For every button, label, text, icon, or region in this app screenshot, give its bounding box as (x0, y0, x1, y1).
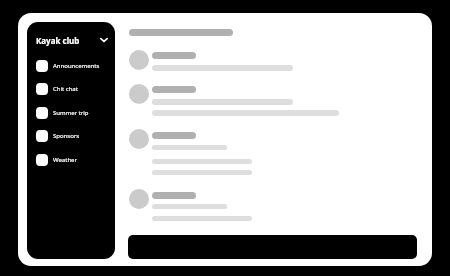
button[interactable]: Summer trip (31, 104, 111, 122)
button[interactable]: Kayak club (27, 32, 115, 48)
staticText: Kayak club (36, 35, 80, 46)
staticText: Summer trip (53, 109, 89, 117)
staticText: Weather (53, 156, 77, 164)
button[interactable]: Weather (31, 151, 111, 169)
staticText: Chit chat (53, 85, 78, 93)
staticText: Announcements (53, 62, 100, 70)
button[interactable]: Announcements (31, 57, 111, 75)
staticText: Sponsors (53, 132, 80, 140)
button[interactable]: Sponsors (31, 127, 111, 145)
button[interactable] (128, 235, 417, 259)
button[interactable]: Chit chat (31, 80, 111, 98)
